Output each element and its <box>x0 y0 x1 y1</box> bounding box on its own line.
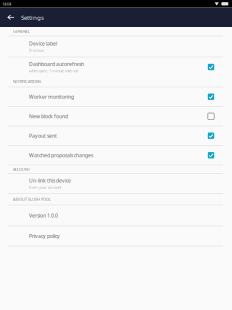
staticText: Device label <box>29 40 57 47</box>
staticText: ACCOUNT <box>13 166 30 172</box>
button[interactable]: Worker monitoring <box>0 87 232 106</box>
staticText: ABOUT SLUSH POOL <box>13 196 51 202</box>
staticText: Worker monitoring <box>29 93 74 100</box>
staticText: Privacy policy <box>29 232 60 239</box>
staticText: Un-link this device <box>29 177 71 184</box>
staticText: Version 1.0.0 <box>29 212 58 219</box>
staticText: NOTIFICATIONS <box>13 79 41 84</box>
staticText: GENERAL <box>13 28 30 34</box>
staticText: when open, 1 minute interval <box>29 68 78 73</box>
button[interactable]: Privacy policy <box>0 226 232 245</box>
staticText: Payout sent <box>29 132 57 139</box>
button[interactable]: Dashboard autorefresh <box>0 57 232 76</box>
staticText: Watched proposals changes <box>29 152 93 159</box>
staticText: 14:04 <box>2 1 11 7</box>
staticText: New block found <box>29 113 68 120</box>
button[interactable]: Back <box>4 8 18 27</box>
button[interactable]: Device label <box>0 36 232 56</box>
button[interactable]: Un-link this device <box>0 174 232 193</box>
staticText: Settings <box>21 13 44 21</box>
staticText: from your account <box>29 185 61 190</box>
button[interactable]: Version 1.0.0 <box>0 205 232 225</box>
button[interactable]: Watched proposals changes <box>0 146 232 164</box>
button[interactable]: Payout sent <box>0 126 232 145</box>
staticText: Precious <box>29 48 44 53</box>
staticText: Dashboard autorefresh <box>29 61 84 68</box>
button[interactable]: New block found <box>0 107 232 125</box>
